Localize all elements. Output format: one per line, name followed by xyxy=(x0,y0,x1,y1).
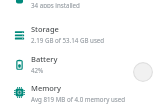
staticText: Avg 819 MB of 4.0 memory used xyxy=(31,95,126,103)
staticText: Battery xyxy=(31,54,58,64)
button[interactable]: Battery xyxy=(0,49,158,79)
button[interactable]: Scroll xyxy=(133,62,153,82)
staticText: 2.19 GB of 53.14 GB used xyxy=(31,36,105,44)
staticText: Memory xyxy=(31,83,62,93)
button[interactable]: Storage xyxy=(0,19,158,49)
staticText: 42% xyxy=(31,66,44,74)
button[interactable]: Apps xyxy=(0,0,158,19)
staticText: 34 apps installed xyxy=(31,1,80,8)
staticText: Storage xyxy=(31,24,59,34)
button[interactable]: Memory xyxy=(0,79,158,106)
